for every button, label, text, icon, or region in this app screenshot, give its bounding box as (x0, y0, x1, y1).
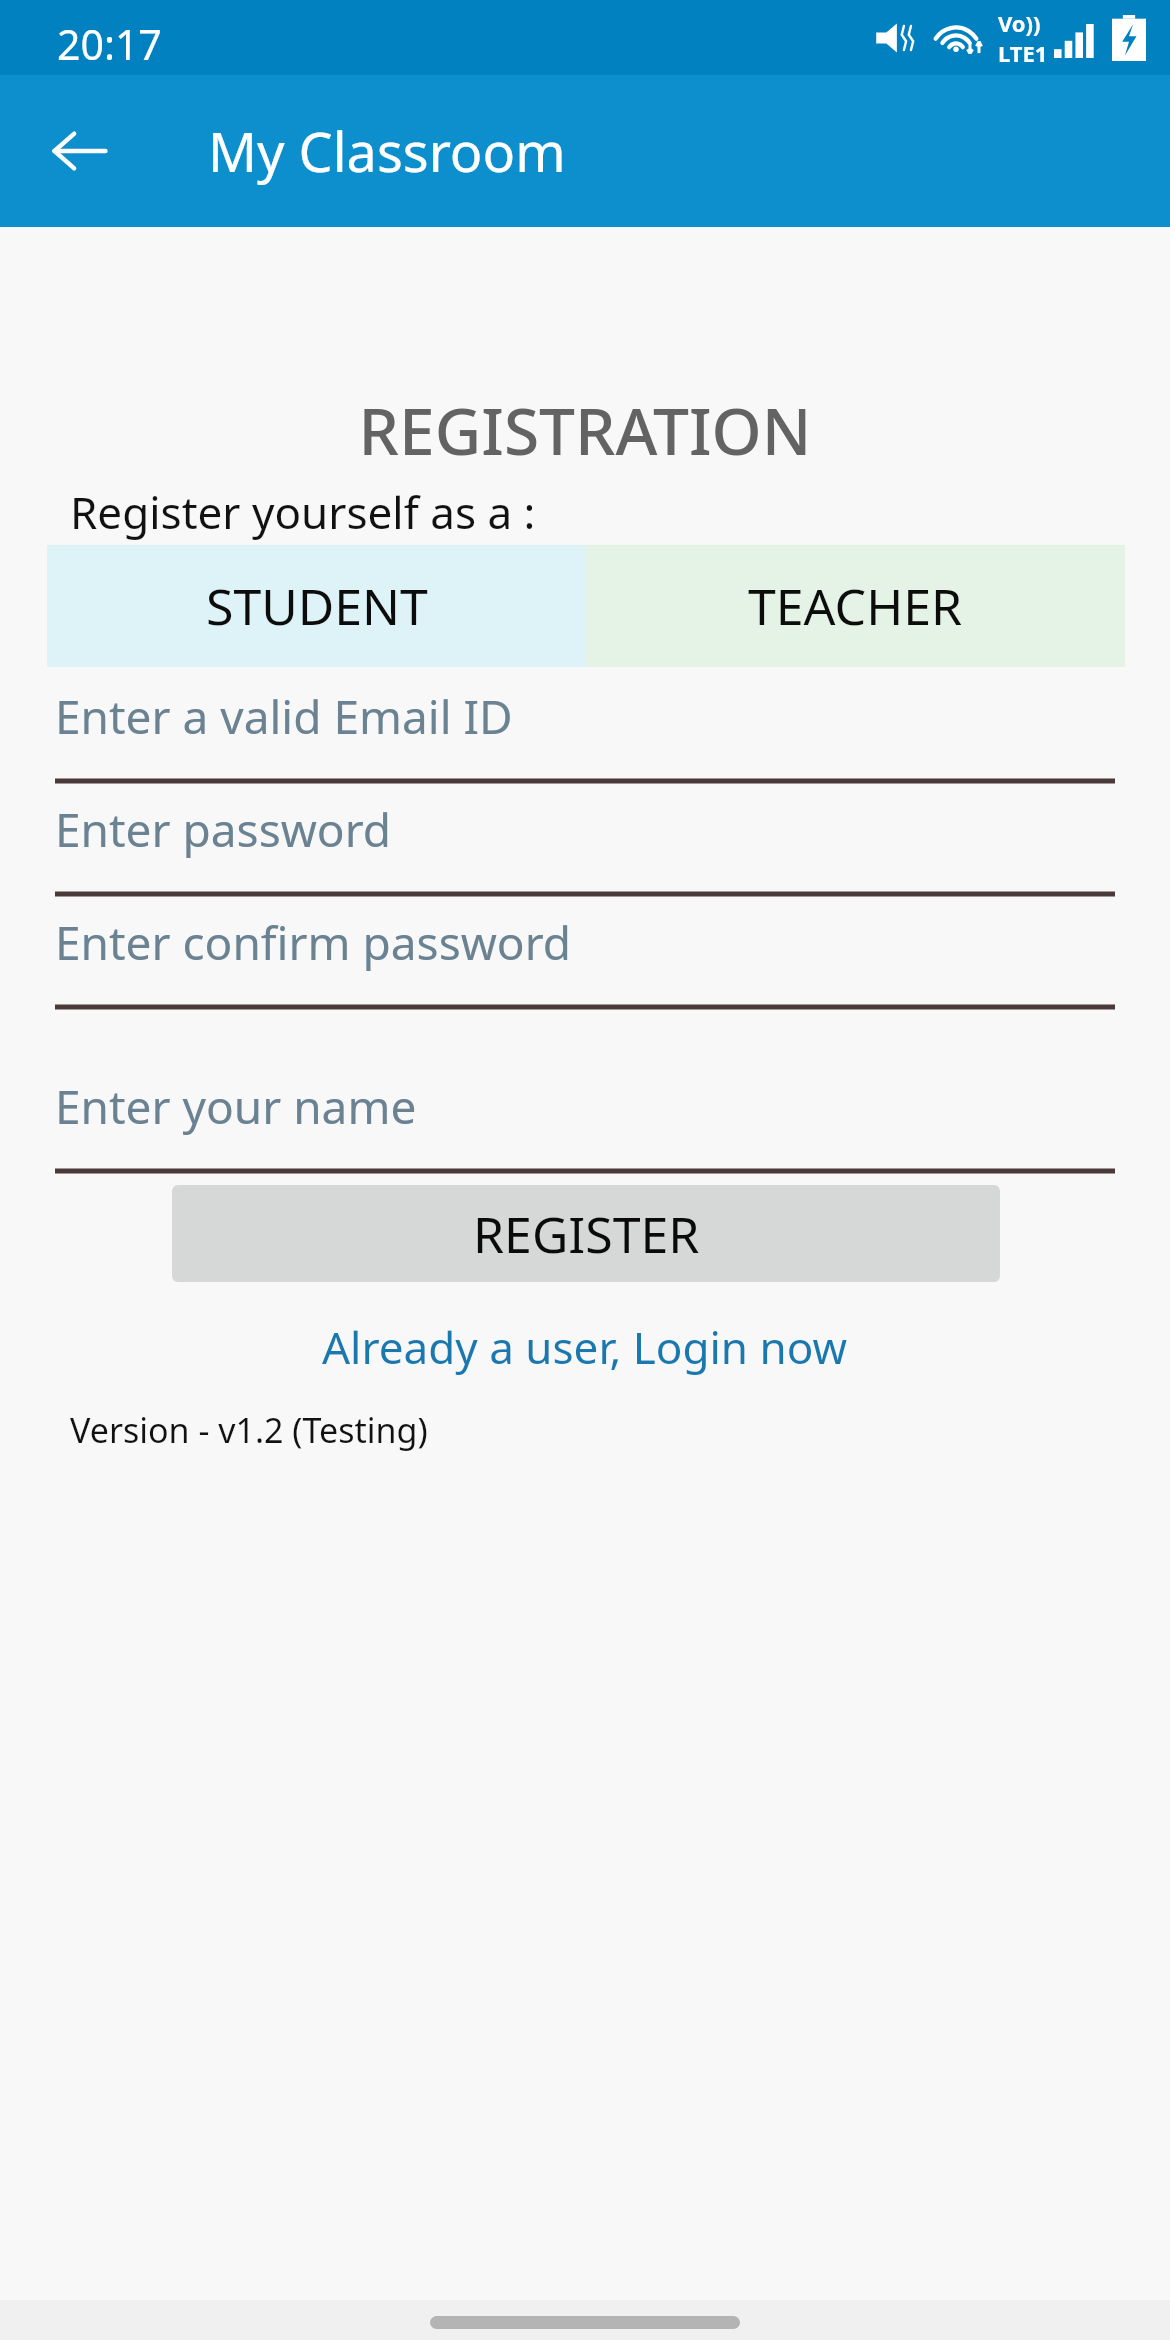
staticText: Enter your name (55, 1075, 417, 1138)
staticText: Enter confirm password (55, 911, 572, 974)
button[interactable]: REGISTER (172, 1185, 1000, 1282)
staticText: REGISTRATION (0, 387, 1170, 474)
staticText: Register yourself as a : (70, 482, 536, 542)
button[interactable]: Enter password (55, 792, 1115, 897)
button[interactable]: Enter confirm password (55, 905, 1115, 1010)
staticText: Vo)) (998, 8, 1041, 38)
staticText: Version - v1.2 (Testing) (70, 1407, 428, 1453)
staticText: LTE1 (998, 38, 1048, 68)
button[interactable]: Enter your name (55, 1069, 1115, 1174)
button[interactable]: TEACHER (586, 545, 1125, 667)
button[interactable]: Back (32, 103, 128, 199)
staticText: STUDENT (206, 572, 428, 640)
staticText: My Classroom (208, 114, 566, 188)
staticText: REGISTER (473, 1200, 700, 1268)
button[interactable]: STUDENT (47, 545, 586, 667)
staticText: Enter password (55, 798, 392, 861)
staticText: TEACHER (748, 572, 963, 640)
button[interactable]: Enter a valid Email ID (55, 679, 1115, 784)
button[interactable]: Already a user, Login now (0, 1307, 1170, 1387)
staticText: 20:17 (57, 16, 162, 72)
staticText: Already a user, Login now (322, 1317, 848, 1377)
staticText: Enter a valid Email ID (55, 685, 513, 748)
